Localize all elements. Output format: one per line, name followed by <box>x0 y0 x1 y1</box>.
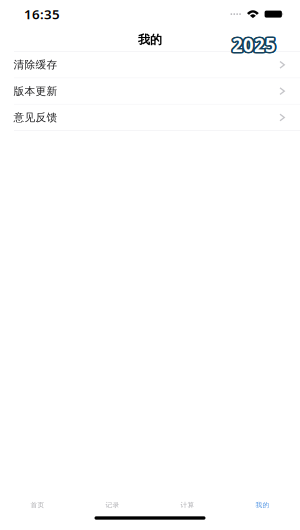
staticText: 我的 <box>138 32 162 47</box>
staticText: 16:35 <box>24 5 60 23</box>
button[interactable]: 记录 <box>75 464 150 510</box>
button[interactable]: 版本更新 <box>0 78 300 104</box>
staticText: 2025 <box>233 32 277 56</box>
staticText: 意见反馈 <box>14 111 58 124</box>
button[interactable]: 首页 <box>0 464 75 510</box>
staticText: 2025 <box>233 31 277 56</box>
button[interactable]: 我的 <box>225 464 300 510</box>
staticText: 2025 <box>231 31 275 56</box>
staticText: 2025 <box>233 33 277 58</box>
staticText: 2025 <box>232 32 276 57</box>
staticText: 清除缓存 <box>14 58 58 71</box>
staticText: 计算 <box>180 501 194 509</box>
staticText: 2025 <box>231 33 275 58</box>
staticText: 我的 <box>255 501 269 509</box>
staticText: 2025 <box>231 32 275 56</box>
staticText: 2025 <box>233 33 277 58</box>
staticText: 记录 <box>105 501 119 509</box>
staticText: 2025 <box>230 32 274 57</box>
staticText: 2025 <box>231 31 275 56</box>
staticText: 2025 <box>233 31 277 56</box>
staticText: 版本更新 <box>14 85 58 98</box>
staticText: 首页 <box>30 501 44 509</box>
button[interactable]: 清除缓存 <box>0 52 300 78</box>
staticText: 2025 <box>232 34 276 58</box>
staticText: 2025 <box>231 33 275 58</box>
staticText: 2025 <box>233 32 277 57</box>
staticText: 2025 <box>233 33 277 58</box>
button[interactable]: 意见反馈 <box>0 105 300 130</box>
button[interactable]: 计算 <box>150 464 225 510</box>
staticText: 2025 <box>232 31 276 56</box>
staticText: 2025 <box>231 33 275 58</box>
